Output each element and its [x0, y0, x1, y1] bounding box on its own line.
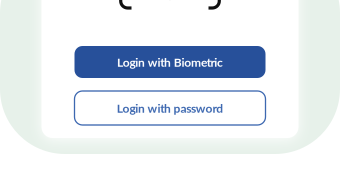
staticText: Login with password	[117, 101, 223, 115]
button[interactable]: Login with Biometric	[74, 46, 265, 78]
staticText: Login with Biometric	[117, 55, 223, 69]
button[interactable]: Login with password	[74, 91, 265, 125]
